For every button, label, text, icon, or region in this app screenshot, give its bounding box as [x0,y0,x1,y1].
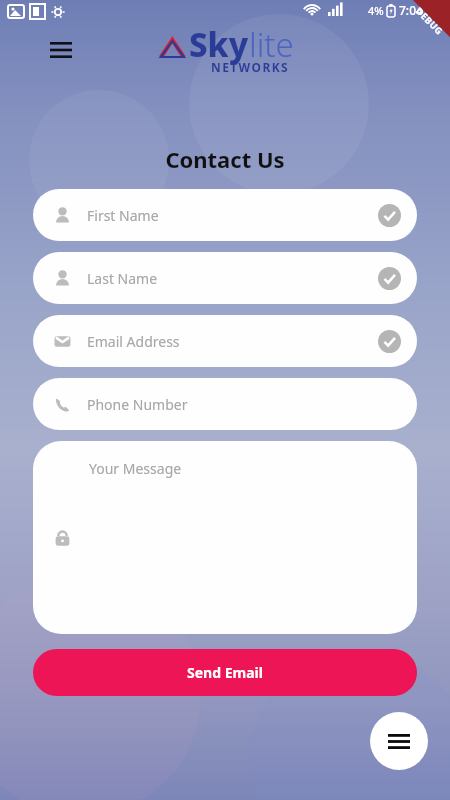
staticText: lite [249,22,294,67]
button[interactable]: Your Message [33,441,417,634]
button[interactable]: Email Address [33,315,417,367]
staticText: 4% [368,3,384,18]
staticText: Phone Number [87,395,188,414]
button[interactable]: Open navigation menu [44,33,78,67]
staticText: 7:04 PM [399,2,445,18]
button[interactable]: Send Email [33,649,417,696]
button[interactable]: First Name [33,189,417,241]
staticText: NETWORKS [211,59,290,75]
staticText: Last Name [87,269,158,288]
staticText: DEBUG [414,5,446,37]
staticText: Sky [189,22,249,67]
staticText: Email Address [87,332,180,351]
button[interactable]: Last Name [33,252,417,304]
staticText: First Name [87,206,159,225]
staticText: Your Message [89,459,182,478]
staticText: Contact Us [0,144,450,174]
button[interactable]: Menu [370,712,428,770]
button[interactable]: Phone Number [33,378,417,430]
staticText: Send Email [187,663,263,682]
